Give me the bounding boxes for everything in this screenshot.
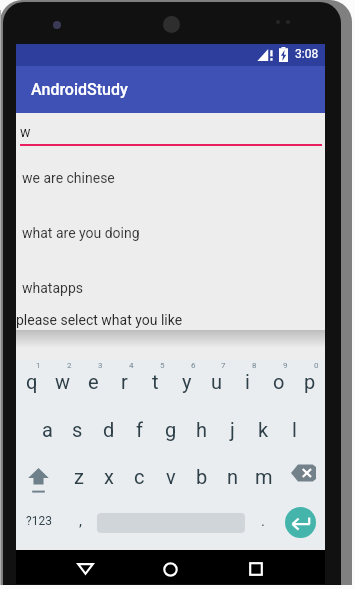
button[interactable]: w xyxy=(20,124,31,140)
button[interactable]: please select what you like xyxy=(16,312,183,328)
button[interactable]: 4 xyxy=(109,359,140,404)
staticText: please select what you like xyxy=(16,312,183,328)
button[interactable]: . xyxy=(248,496,278,546)
staticText: w xyxy=(55,370,71,393)
button[interactable]: h xyxy=(186,404,217,450)
staticText: a xyxy=(42,418,53,441)
staticText: n xyxy=(227,465,239,488)
staticText: f xyxy=(136,418,143,441)
button[interactable]: m xyxy=(248,450,279,496)
staticText: whatapps xyxy=(22,280,83,296)
staticText: 7 xyxy=(221,361,226,370)
button[interactable]: l xyxy=(279,404,310,450)
staticText: 9 xyxy=(283,361,288,370)
staticText: . xyxy=(261,512,265,530)
button[interactable]: g xyxy=(155,404,186,450)
staticText: g xyxy=(165,418,177,441)
staticText: p xyxy=(304,370,316,393)
staticText: 1 xyxy=(36,361,41,370)
staticText: 2 xyxy=(67,361,72,370)
staticText: 8 xyxy=(252,361,257,370)
staticText: r xyxy=(121,370,128,393)
staticText: 4 xyxy=(129,361,134,370)
button[interactable]: n xyxy=(217,450,248,496)
staticText: 3:08 xyxy=(295,47,319,61)
button[interactable]: 9 xyxy=(263,359,294,404)
button[interactable]: ?123 xyxy=(16,496,62,546)
staticText: e xyxy=(88,370,99,393)
button[interactable]: AndroidStudy xyxy=(16,66,325,113)
button[interactable]: 1 xyxy=(16,359,47,404)
staticText: ?123 xyxy=(26,514,52,528)
staticText: i xyxy=(245,370,250,393)
staticText: 6 xyxy=(191,361,196,370)
button[interactable]: what are you doing xyxy=(16,205,325,260)
staticText: 3 xyxy=(98,361,103,370)
button[interactable]: k xyxy=(248,404,279,450)
button[interactable]: c xyxy=(124,450,155,496)
staticText: h xyxy=(196,418,208,441)
button[interactable]: whatapps xyxy=(16,260,325,315)
button[interactable]: we are chinese xyxy=(16,150,325,205)
button[interactable]: Recents xyxy=(241,554,271,584)
staticText: x xyxy=(104,465,114,488)
staticText: m xyxy=(255,465,273,488)
staticText: v xyxy=(166,465,176,488)
button[interactable]: 8 xyxy=(232,359,263,404)
button[interactable]: b xyxy=(186,450,217,496)
button[interactable]: 2 xyxy=(47,359,78,404)
staticText: q xyxy=(26,370,38,393)
button[interactable]: 5 xyxy=(140,359,171,404)
staticText: j xyxy=(230,418,235,441)
button[interactable]: 7 xyxy=(201,359,232,404)
staticText: s xyxy=(72,418,83,441)
button[interactable]: 0 xyxy=(294,359,325,404)
staticText: y xyxy=(182,370,192,393)
staticText: o xyxy=(273,370,285,393)
staticText: , xyxy=(79,512,82,530)
button[interactable]: z xyxy=(63,450,94,496)
button[interactable]: , xyxy=(65,496,95,546)
staticText: c xyxy=(134,465,145,488)
button[interactable]: x xyxy=(93,450,124,496)
button[interactable]: 3 xyxy=(78,359,109,404)
button[interactable]: f xyxy=(124,404,155,450)
staticText: d xyxy=(103,418,115,441)
button[interactable]: d xyxy=(93,404,124,450)
staticText: b xyxy=(196,465,208,488)
staticText: u xyxy=(211,370,223,393)
button[interactable]: v xyxy=(155,450,186,496)
button[interactable]: a xyxy=(32,404,63,450)
button[interactable]: Back xyxy=(70,554,100,584)
staticText: 0 xyxy=(314,361,319,370)
button[interactable]: j xyxy=(217,404,248,450)
button[interactable]: Shift xyxy=(23,450,54,496)
staticText: z xyxy=(74,465,84,488)
button[interactable]: 6 xyxy=(171,359,202,404)
button[interactable]: Backspace xyxy=(287,450,319,496)
staticText: t xyxy=(152,370,159,393)
staticText: AndroidStudy xyxy=(31,80,128,99)
staticText: l xyxy=(292,418,297,441)
staticText: 5 xyxy=(160,361,165,370)
button[interactable]: Home xyxy=(155,554,185,584)
staticText: what are you doing xyxy=(22,225,140,241)
staticText: we are chinese xyxy=(22,170,115,186)
button[interactable]: Enter xyxy=(285,507,316,538)
button[interactable]: s xyxy=(62,404,93,450)
staticText: k xyxy=(258,418,269,441)
